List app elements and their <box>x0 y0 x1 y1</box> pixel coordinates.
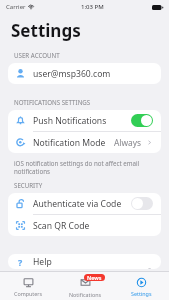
button[interactable]: News <box>57 272 113 300</box>
staticText: Help <box>33 256 52 268</box>
button[interactable]: Notification Mode <box>8 132 161 153</box>
staticText: NOTIFICATIONS SETTINGS <box>14 98 91 106</box>
staticText: Always <box>114 137 142 148</box>
button[interactable]: Settings <box>113 272 169 300</box>
staticText: Scan QR Code <box>33 220 90 232</box>
staticText: Computers <box>14 290 43 297</box>
staticText: ? <box>18 256 23 267</box>
staticText: Notifications <box>69 291 102 298</box>
button[interactable]: Switch on <box>131 114 153 127</box>
button[interactable]: Push Notifications <box>8 110 161 132</box>
staticText: 1:03 PM <box>81 3 104 11</box>
staticText: Push Notifications <box>33 115 107 127</box>
button[interactable]: Authenticate via Code <box>8 193 161 215</box>
button[interactable]: Switch off <box>131 197 153 210</box>
staticText: Carrier <box>6 3 26 11</box>
staticText: News <box>87 274 102 281</box>
staticText: Settings <box>11 19 81 42</box>
staticText: user@msp360.com <box>33 68 111 80</box>
button[interactable]: Scan QR Code <box>8 215 161 236</box>
button[interactable]: ? <box>8 254 161 269</box>
staticText: Authenticate via Code <box>33 198 122 210</box>
button[interactable]: user@msp360.com <box>8 63 161 84</box>
staticText: Settings <box>131 290 152 297</box>
staticText: iOS notification settings do not affect … <box>14 159 143 175</box>
button[interactable]: Computers <box>0 272 57 300</box>
staticText: SECURITY <box>14 181 43 189</box>
staticText: USER ACCOUNT <box>14 51 60 59</box>
staticText: Notification Mode <box>33 137 106 149</box>
